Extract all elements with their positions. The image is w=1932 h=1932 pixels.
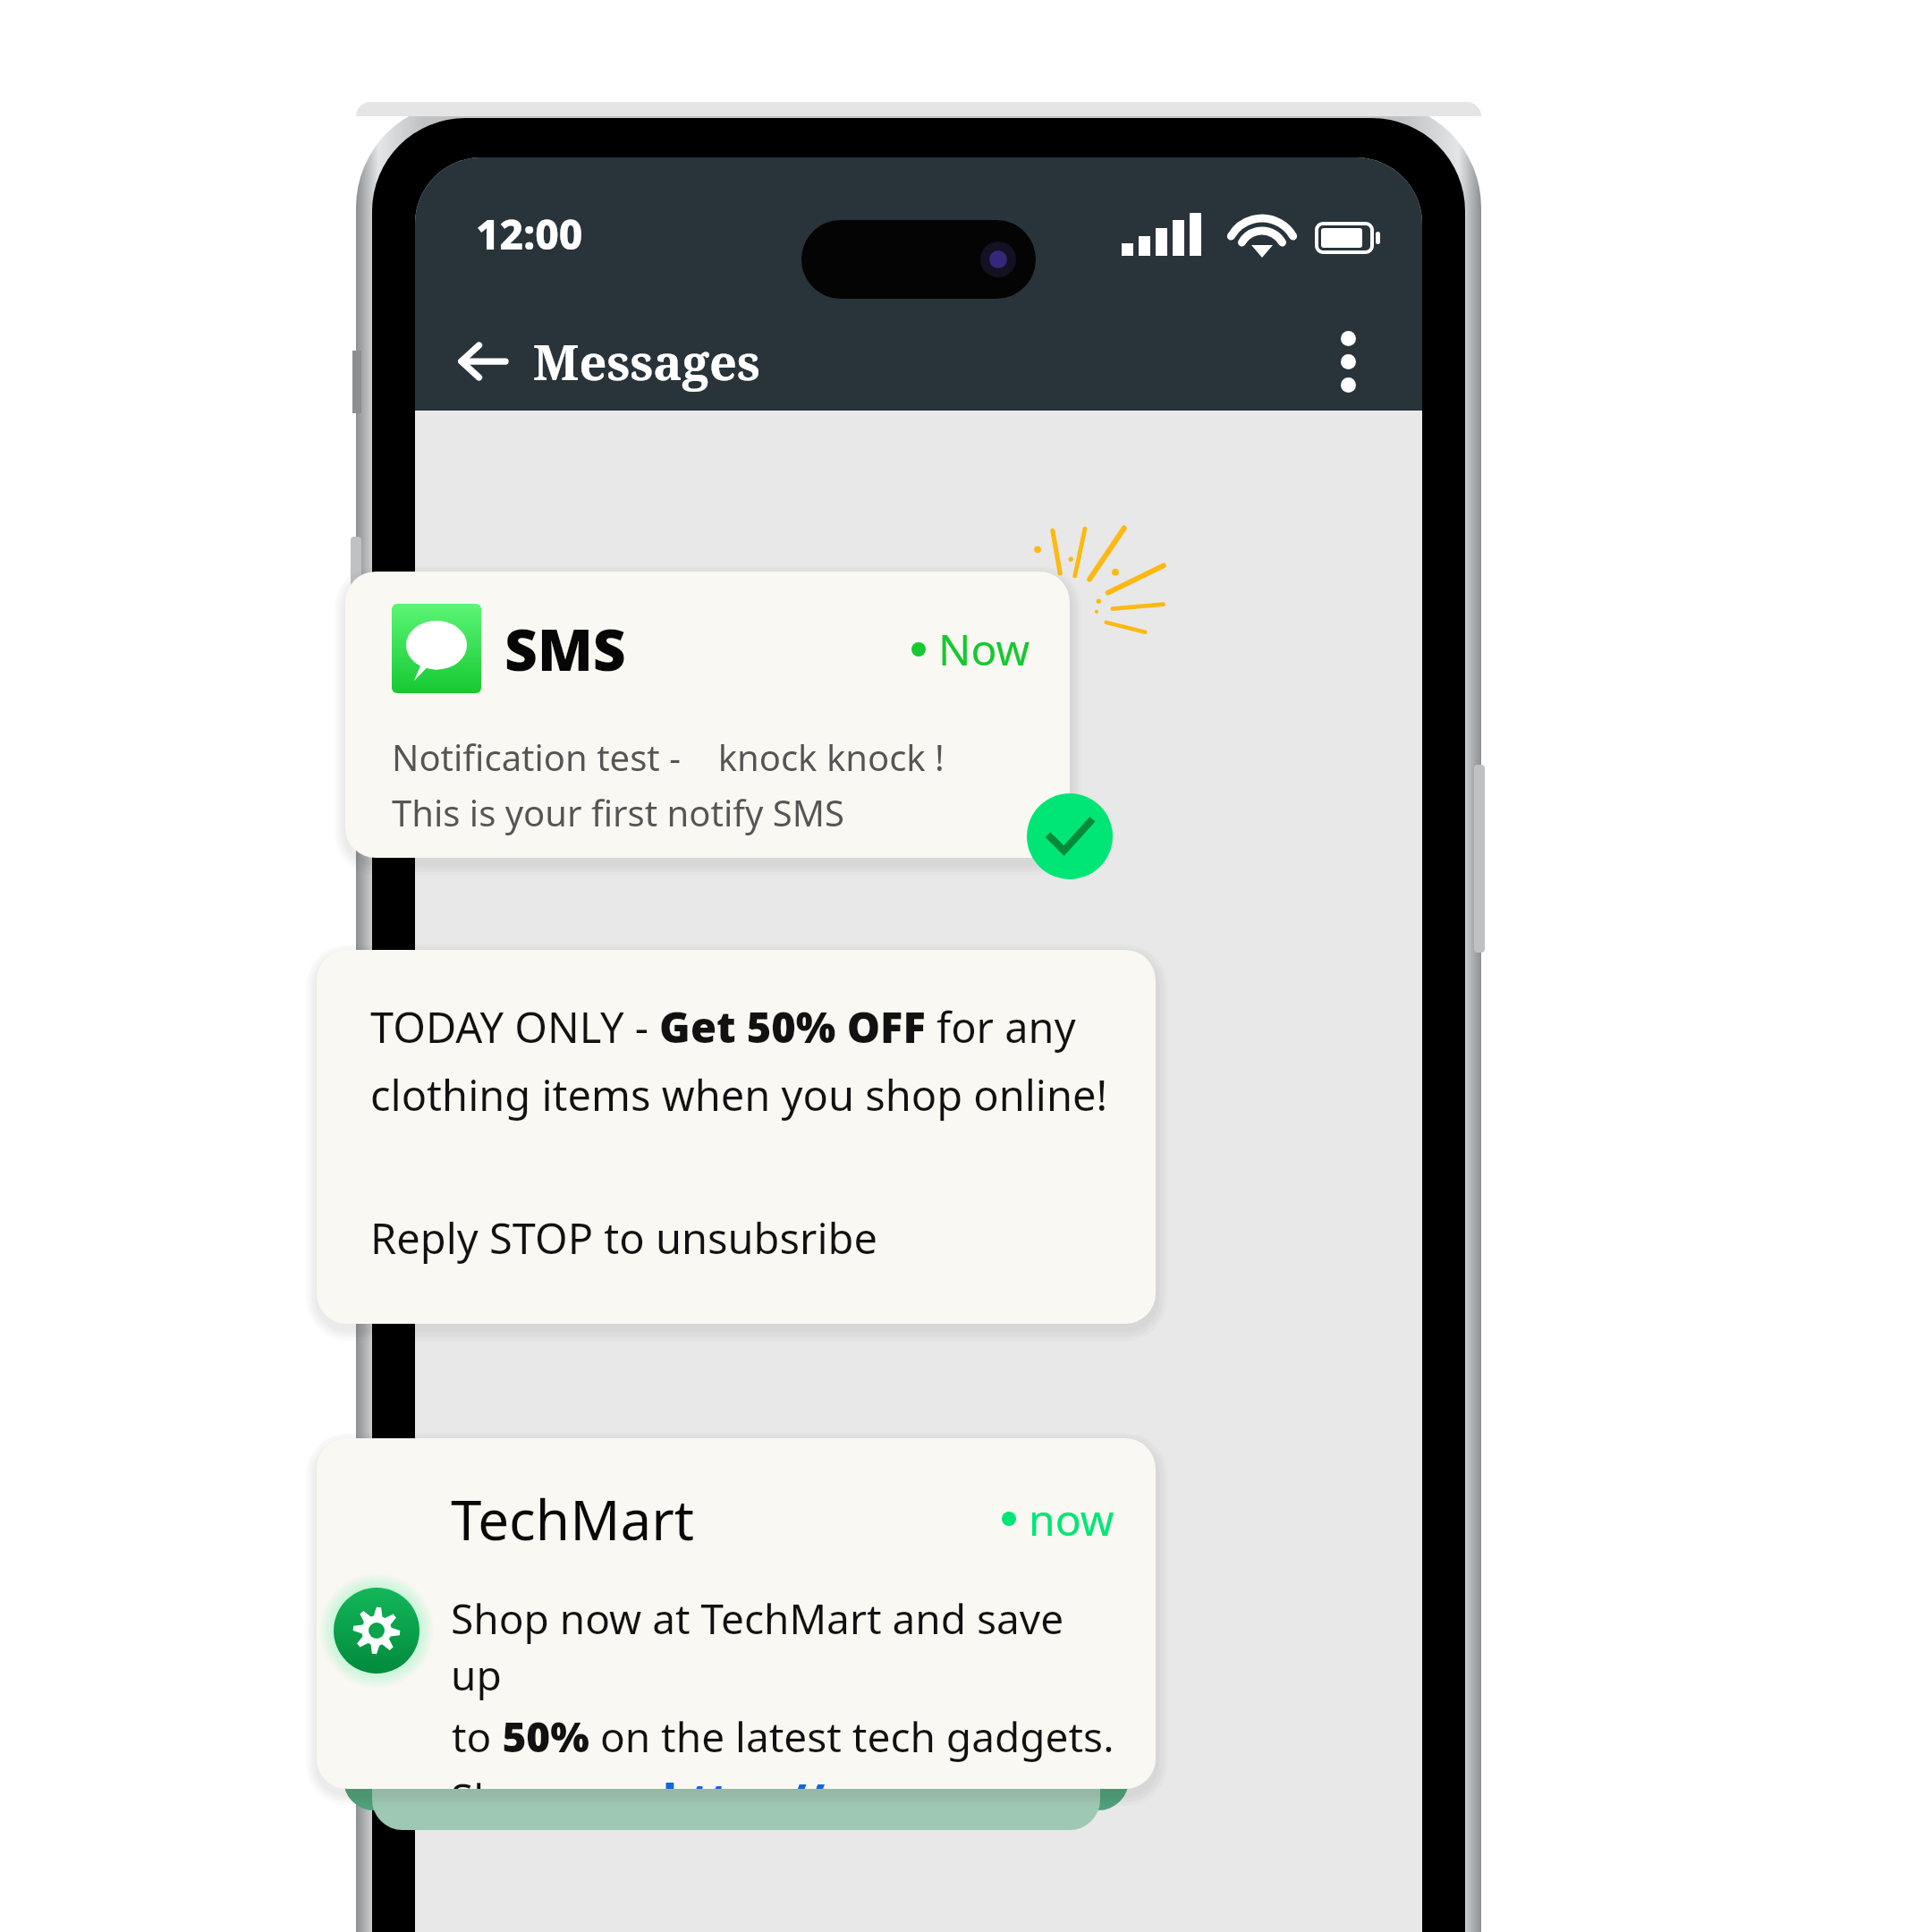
button[interactable]: TechMart xyxy=(317,1438,1156,1789)
staticText: clothing items when you shop online! xyxy=(370,1066,1108,1123)
staticText: This is your first notify SMS xyxy=(392,788,844,836)
button[interactable]: Delivered xyxy=(1027,793,1113,879)
button[interactable]: More options xyxy=(1309,323,1386,400)
staticText: TechMart xyxy=(451,1481,695,1556)
staticText: SMS xyxy=(504,610,626,688)
staticText: Messages xyxy=(533,328,760,394)
staticText: to 50% on the latest tech gadgets. xyxy=(452,1708,1114,1765)
button[interactable]: Settings xyxy=(334,1588,419,1674)
staticText: Reply STOP to unsubsribe xyxy=(370,1209,877,1267)
staticText: Shop now: https://techmart.com xyxy=(451,1770,1114,1789)
staticText: Notification test - knock knock ! xyxy=(392,733,945,781)
staticText: TODAY ONLY - Get 50% OFF for any xyxy=(370,998,1076,1055)
button[interactable]: SMS xyxy=(345,572,1070,858)
staticText: now xyxy=(1029,1490,1114,1548)
button[interactable]: TODAY ONLY - Get 50% OFF for any xyxy=(317,950,1156,1324)
button[interactable]: Back xyxy=(444,323,521,400)
staticText: Now xyxy=(938,620,1030,678)
staticText: 12:00 xyxy=(476,206,583,262)
staticText: Shop now at TechMart and save up xyxy=(451,1590,1114,1703)
